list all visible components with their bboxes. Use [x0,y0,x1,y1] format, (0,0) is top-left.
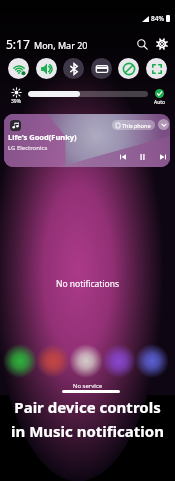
button[interactable]: Search [133,35,151,53]
staticText: 5:17 [6,36,30,52]
staticText: Mon, Mar 20 [34,39,88,51]
staticText: Pair device controls [14,397,161,417]
button[interactable]: Sound [36,58,57,79]
staticText: Auto [154,99,166,106]
button[interactable]: Settings [153,35,171,53]
staticText: No service [0,382,175,390]
staticText: LG Electronics [8,144,48,152]
button[interactable]: Expand [158,119,169,130]
button[interactable]: Cards [91,58,112,79]
button[interactable]: This phone [4,114,170,167]
staticText: 84% [151,14,164,23]
staticText: in Music notification [11,421,164,441]
button[interactable]: Previous [116,150,129,163]
button[interactable]: This phone [112,120,155,130]
staticText: No notifications [0,278,175,290]
button[interactable]: Next [156,150,169,163]
staticText: This phone [122,122,151,129]
button[interactable]: Do not disturb [118,58,139,79]
button[interactable]: Bluetooth [63,58,84,79]
button[interactable] [28,91,148,97]
button[interactable]: Pause [136,150,149,163]
button[interactable]: Scan [146,58,167,79]
staticText: Life's Good(Funky) [8,132,77,142]
staticText: 39% [11,98,21,105]
button[interactable]: Wi-Fi [8,58,29,79]
